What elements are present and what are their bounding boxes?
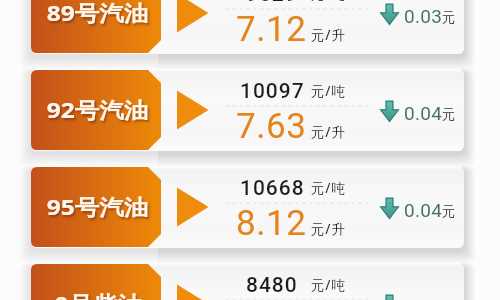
button[interactable]: 95号汽油 xyxy=(31,166,464,248)
button[interactable]: 92号汽油 xyxy=(31,69,464,151)
staticText: 0.04 xyxy=(404,102,443,124)
staticText: 0.03 xyxy=(404,5,443,27)
button[interactable]: 0号柴油 xyxy=(31,264,161,300)
staticText: 7.12 xyxy=(236,9,307,50)
staticText: 元/升 xyxy=(311,123,346,141)
staticText: 10668 xyxy=(240,176,305,201)
staticText: 元 xyxy=(442,203,456,220)
staticText: 元/吨 xyxy=(311,276,346,294)
staticText: 92号汽油 xyxy=(47,95,149,124)
button[interactable]: 89号汽油 xyxy=(31,0,161,53)
staticText: 元/吨 xyxy=(311,179,346,197)
staticText: 元/吨 xyxy=(311,82,346,100)
button[interactable]: 95号汽油 xyxy=(31,167,161,247)
staticText: 89号汽油 xyxy=(47,0,149,27)
staticText: 95号汽油 xyxy=(47,192,149,221)
staticText: 0.04 xyxy=(404,199,443,221)
staticText: 9529 xyxy=(246,0,298,7)
staticText: 7.63 xyxy=(236,106,307,147)
button[interactable]: 0号柴油 xyxy=(31,263,464,300)
staticText: 10097 xyxy=(240,79,305,104)
staticText: 元/升 xyxy=(311,220,346,238)
staticText: 8.12 xyxy=(236,203,307,244)
button[interactable]: 92号汽油 xyxy=(31,70,161,150)
staticText: 元/升 xyxy=(311,26,346,44)
staticText: 8480 xyxy=(246,273,298,298)
staticText: 元 xyxy=(442,9,456,26)
staticText: 元/吨 xyxy=(311,0,346,3)
button[interactable]: 89号汽油 xyxy=(31,0,464,54)
staticText: 元 xyxy=(442,106,456,123)
staticText: 0号柴油 xyxy=(55,289,142,300)
